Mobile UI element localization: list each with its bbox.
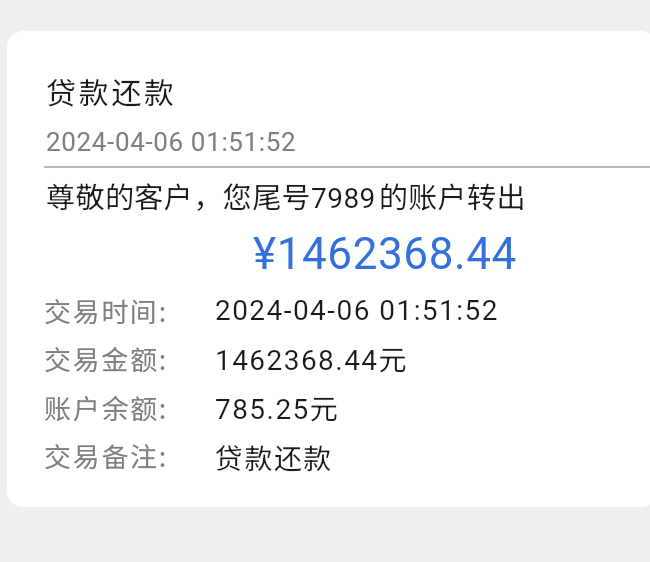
staticText: 2024-04-06 01:51:52 <box>215 294 499 327</box>
staticText: 交易备注: <box>44 436 169 475</box>
button[interactable]: 贷款还款 <box>7 31 650 507</box>
staticText: 1462368.44元 <box>215 338 408 378</box>
staticText: 交易金额: <box>44 339 169 378</box>
staticText: 账户余额: <box>44 388 169 427</box>
button[interactable]: 交易时间: <box>44 291 650 331</box>
staticText: 交易时间: <box>44 291 169 330</box>
staticText: 2024-04-06 01:51:52 <box>46 127 297 157</box>
staticText: 贷款还款 <box>46 69 177 112</box>
staticText: 785.25元 <box>215 387 340 427</box>
staticText: 尊敬的客户，您尾号7989 的账户转出 <box>46 174 526 216</box>
button[interactable]: 交易金额: <box>44 339 650 379</box>
button[interactable]: 交易备注: <box>44 436 650 476</box>
staticText: ¥1462368.44 <box>253 228 517 280</box>
staticText: 贷款还款 <box>215 437 333 477</box>
button[interactable]: 账户余额: <box>44 388 650 428</box>
